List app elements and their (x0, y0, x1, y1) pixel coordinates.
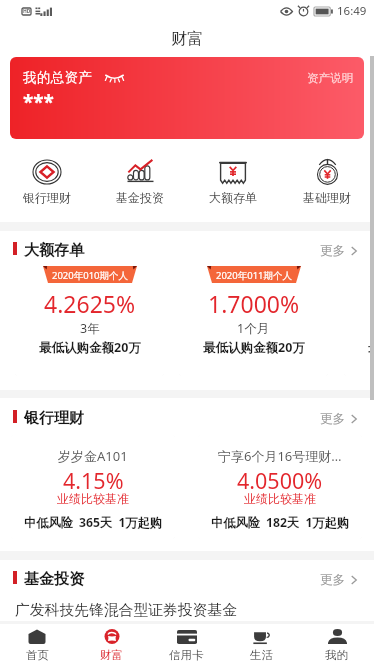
staticText: *** (23, 89, 54, 115)
staticText: 4.2625% (44, 288, 136, 319)
staticText: 大额存单 (24, 241, 84, 260)
staticText: 财富 (171, 29, 203, 49)
staticText: 业绩比较基准 (57, 491, 129, 506)
staticText: 1.7000% (208, 288, 300, 319)
button[interactable]: 更多 (320, 243, 357, 259)
staticText: 业绩比较基准 (244, 491, 316, 506)
staticText: 信用卡 (169, 648, 204, 662)
button[interactable]: 大额存单 (186, 159, 280, 205)
button[interactable]: 4.2625% (15, 271, 164, 376)
staticText: 我的总资产 (23, 69, 93, 86)
button[interactable]: 银行理财 (0, 159, 93, 205)
staticText: 基金投资 (24, 570, 84, 589)
staticText: 银行理财 (23, 190, 71, 205)
staticText: 基金投资 (116, 190, 164, 205)
staticText: 3年 (80, 320, 100, 337)
staticText: 资产说明 (307, 71, 353, 85)
button[interactable]: 我的 (299, 624, 374, 666)
button[interactable]: 财富 (74, 624, 149, 666)
button[interactable]: 更多 (320, 411, 357, 427)
staticText: 1个月 (237, 320, 270, 337)
staticText: 2020年010期个人 (43, 269, 137, 282)
staticText: 更多 (320, 243, 345, 259)
button[interactable]: 岁岁金A101 (11, 435, 175, 539)
button[interactable]: 基础理财 (280, 159, 374, 205)
staticText: 4.15% (63, 466, 124, 495)
button[interactable]: 宁享6个月16号理财… (198, 435, 362, 539)
staticText: 最低认购金额20万 (39, 339, 141, 356)
staticText: 首页 (26, 648, 49, 662)
button[interactable]: 3.8000% (344, 271, 374, 376)
staticText: 基础理财 (303, 190, 351, 205)
staticText: 财富 (100, 648, 123, 662)
staticText: 4.0500% (237, 466, 323, 495)
staticText: 岁岁金A101 (58, 447, 128, 465)
staticText: 生活 (250, 648, 273, 662)
staticText: 中低风险 182天 1万起购 (211, 514, 350, 531)
staticText: 宁享6个月16号理财… (218, 447, 342, 465)
button[interactable]: 1.7000% (179, 271, 328, 376)
button[interactable]: 首页 (0, 624, 74, 666)
staticText: 广发科技先锋混合型证券投资基金 (15, 601, 237, 620)
staticText: 银行理财 (24, 409, 84, 428)
staticText: 2020年011期个人 (207, 269, 301, 282)
button[interactable]: 生活 (224, 624, 299, 666)
button[interactable]: 我的总资产 (10, 57, 364, 139)
button[interactable]: 资产说明 (305, 68, 355, 88)
staticText: HD (23, 8, 31, 15)
staticText: 更多 (320, 572, 345, 588)
staticText: 我的 (325, 648, 348, 662)
staticText: 最低认购金额20万 (368, 339, 374, 356)
staticText: 更多 (320, 411, 345, 427)
staticText: 16:49 (337, 3, 367, 19)
button[interactable]: 信用卡 (149, 624, 224, 666)
staticText: 最低认购金额20万 (203, 339, 305, 356)
button[interactable]: 更多 (320, 572, 357, 588)
button[interactable]: 基金投资 (93, 159, 186, 205)
staticText: 大额存单 (209, 190, 257, 205)
staticText: 中低风险 365天 1万起购 (24, 514, 163, 531)
